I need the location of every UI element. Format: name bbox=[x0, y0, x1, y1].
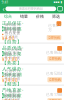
staticText: 已售1788 bbox=[46, 92, 62, 97]
staticText: 已售2.1万 bbox=[48, 23, 61, 32]
staticText: ▪▪▪ ▮ bbox=[53, 0, 62, 4]
button[interactable]: 【热卖】人气爆款·好评如潮 bbox=[0, 65, 64, 84]
staticText: 已售8632 bbox=[46, 50, 62, 55]
staticText: ¥29.90 bbox=[2, 77, 18, 84]
button[interactable]: 【官方】正品保证·限时特惠 bbox=[0, 19, 64, 42]
staticText: 领券立减 先到先得 bbox=[4, 72, 20, 81]
staticText: 顺丰包邮 当日发货 bbox=[4, 26, 20, 35]
staticText: 【精选】产地直发·新鲜到家 bbox=[2, 81, 23, 99]
button[interactable]: 【自营】品质优选·新品上架 bbox=[0, 44, 64, 63]
staticText: 赠运费险 售后无忧 bbox=[4, 51, 20, 60]
staticText: 价格 bbox=[36, 14, 44, 19]
staticText: 搜索你想要的商品 bbox=[19, 7, 43, 11]
button[interactable]: 价格 bbox=[32, 14, 48, 19]
button[interactable]: 搜索你想要的商品 bbox=[5, 6, 56, 11]
button[interactable]: 筛选 bbox=[48, 14, 64, 19]
button[interactable]: 【精选】产地直发·新鲜到家 bbox=[0, 86, 64, 100]
staticText: 【官方】正品保证·限时特惠 bbox=[2, 14, 23, 32]
staticText: 立即抢购 bbox=[49, 99, 61, 100]
staticText: 【自营】品质优选·新品上架 bbox=[2, 39, 23, 57]
staticText: 立即抢购 bbox=[48, 35, 60, 40]
staticText: 已售5204 bbox=[46, 71, 62, 76]
staticText: ¥58.00 bbox=[2, 98, 18, 100]
staticText: 冷链配送 锁鲜到家 bbox=[4, 93, 20, 100]
staticText: 立即抢购 bbox=[49, 78, 61, 82]
staticText: 产地直采 层层质检 bbox=[4, 89, 20, 98]
staticText: ‹ bbox=[2, 4, 4, 13]
button[interactable]: Messages bbox=[56, 7, 63, 11]
staticText: 销量 bbox=[20, 14, 28, 19]
staticText: ¥12.80 bbox=[2, 56, 18, 63]
staticText: 满99减10 全场通用 bbox=[4, 22, 20, 32]
button[interactable]: 综合 bbox=[0, 14, 16, 19]
staticText: ¥4.00 bbox=[2, 35, 15, 41]
button[interactable]: Back bbox=[1, 6, 5, 11]
button[interactable]: 销量 bbox=[16, 14, 32, 19]
staticText: 9:41 bbox=[2, 0, 9, 4]
staticText: 7天无理由退换 bbox=[4, 47, 22, 56]
staticText: 月销2万+ 回头客多 bbox=[4, 68, 20, 77]
staticText: 立即抢购 bbox=[49, 57, 61, 61]
staticText: 【热卖】人气爆款·好评如潮 bbox=[2, 60, 23, 78]
staticText: 新人专享 立减5元 bbox=[4, 30, 20, 39]
staticText: 综合 bbox=[4, 14, 12, 19]
staticText: 筛选 bbox=[52, 14, 60, 19]
